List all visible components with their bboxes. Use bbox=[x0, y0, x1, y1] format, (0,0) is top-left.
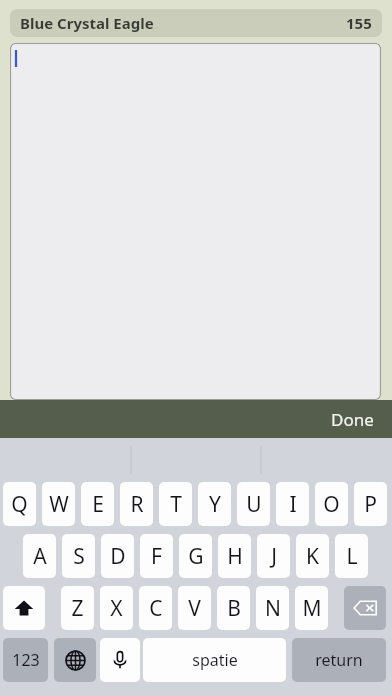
button[interactable]: D bbox=[101, 534, 134, 578]
button[interactable]: Y bbox=[198, 482, 231, 526]
button[interactable]: P bbox=[354, 482, 387, 526]
staticText: C bbox=[149, 594, 163, 623]
button[interactable]: spatie bbox=[143, 638, 286, 682]
staticText: I bbox=[289, 490, 297, 519]
staticText: X bbox=[110, 594, 123, 623]
button[interactable]: F bbox=[140, 534, 173, 578]
button[interactable]: Done bbox=[313, 400, 392, 438]
staticText: U bbox=[246, 490, 262, 519]
button[interactable]: Dictate bbox=[100, 638, 140, 682]
button[interactable]: Shift bbox=[3, 586, 45, 630]
staticText: S bbox=[73, 542, 85, 571]
staticText: B bbox=[227, 594, 241, 623]
button[interactable]: G bbox=[179, 534, 212, 578]
button[interactable]: I bbox=[276, 482, 309, 526]
staticText: T bbox=[170, 490, 182, 519]
button[interactable]: K bbox=[296, 534, 329, 578]
staticText: Blue Crystal Eagle bbox=[20, 13, 154, 33]
staticText: G bbox=[188, 542, 204, 571]
button[interactable]: V bbox=[178, 586, 211, 630]
staticText: M bbox=[302, 594, 322, 623]
button[interactable]: J bbox=[257, 534, 290, 578]
staticText: return bbox=[315, 649, 363, 671]
staticText: R bbox=[130, 490, 144, 519]
button[interactable]: O bbox=[315, 482, 348, 526]
button[interactable]: M bbox=[295, 586, 328, 630]
staticText: D bbox=[110, 542, 126, 571]
staticText: V bbox=[188, 594, 201, 623]
staticText: E bbox=[92, 490, 104, 519]
button[interactable]: C bbox=[139, 586, 172, 630]
button[interactable]: E bbox=[81, 482, 114, 526]
staticText: H bbox=[227, 542, 243, 571]
staticText: L bbox=[346, 542, 358, 571]
staticText: Q bbox=[11, 490, 28, 519]
button[interactable]: X bbox=[100, 586, 133, 630]
button[interactable]: Blue Crystal Eagle bbox=[10, 9, 382, 37]
button[interactable]: Q bbox=[3, 482, 36, 526]
staticText: O bbox=[323, 490, 340, 519]
button[interactable]: W bbox=[42, 482, 75, 526]
staticText: spatie bbox=[192, 649, 238, 671]
button[interactable]: 123 bbox=[3, 638, 48, 682]
staticText: N bbox=[265, 594, 281, 623]
button[interactable]: Backspace bbox=[344, 586, 386, 630]
button[interactable]: N bbox=[256, 586, 289, 630]
staticText: Y bbox=[209, 490, 221, 519]
button[interactable]: A bbox=[23, 534, 56, 578]
button[interactable]: U bbox=[237, 482, 270, 526]
button[interactable]: R bbox=[120, 482, 153, 526]
button[interactable] bbox=[10, 43, 381, 400]
staticText: 123 bbox=[12, 649, 40, 671]
button[interactable]: return bbox=[292, 638, 386, 682]
button[interactable]: L bbox=[335, 534, 368, 578]
staticText: W bbox=[49, 490, 69, 519]
staticText: F bbox=[151, 542, 162, 571]
button[interactable]: S bbox=[62, 534, 95, 578]
staticText: A bbox=[33, 542, 47, 571]
button[interactable]: Z bbox=[61, 586, 94, 630]
button[interactable]: Change keyboard bbox=[54, 638, 96, 682]
staticText: 155 bbox=[346, 13, 372, 33]
button[interactable]: B bbox=[217, 586, 250, 630]
staticText: K bbox=[306, 542, 319, 571]
button[interactable]: H bbox=[218, 534, 251, 578]
staticText: Done bbox=[331, 408, 374, 431]
button[interactable]: T bbox=[159, 482, 192, 526]
staticText: J bbox=[271, 542, 277, 571]
staticText: P bbox=[364, 490, 377, 519]
staticText: Z bbox=[71, 594, 84, 623]
